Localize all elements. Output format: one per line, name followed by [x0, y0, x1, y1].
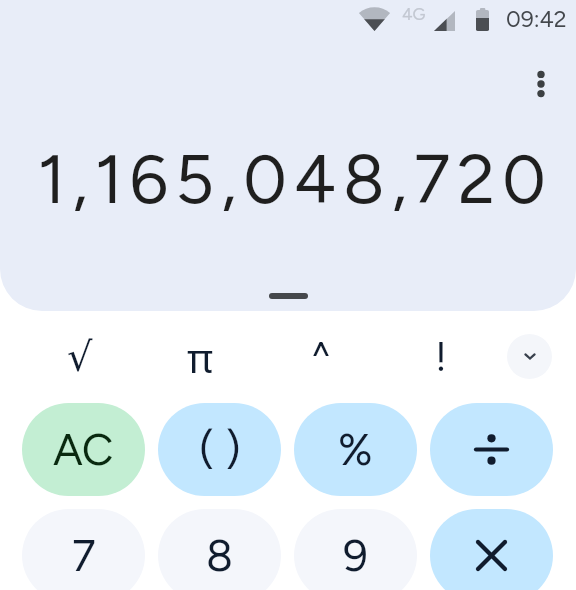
button[interactable]: % [294, 403, 417, 496]
staticText: 8 [206, 529, 234, 582]
button[interactable]: ( ) [158, 403, 281, 496]
button[interactable]: √ [34, 311, 126, 403]
button[interactable]: π [154, 311, 246, 403]
button[interactable]: Divide [430, 403, 553, 496]
staticText: 4G [402, 4, 426, 24]
staticText: 1,165,048,720 [7, 138, 576, 220]
staticText: AC [53, 423, 114, 476]
button[interactable]: ! [395, 311, 487, 403]
button[interactable]: 7 [22, 509, 145, 590]
button[interactable]: Collapse keypad [507, 334, 552, 379]
button[interactable]: Multiply [430, 509, 553, 590]
button[interactable]: More options [517, 60, 565, 108]
button[interactable]: ^ [275, 311, 367, 403]
button[interactable]: 8 [158, 509, 281, 590]
staticText: ! [435, 333, 447, 381]
button[interactable]: AC [22, 403, 145, 496]
staticText: π [187, 330, 214, 384]
staticText: % [338, 423, 373, 476]
staticText: 9 [343, 529, 368, 582]
staticText: ( ) [199, 423, 241, 476]
staticText: ^ [310, 333, 333, 381]
staticText: 7 [72, 529, 96, 582]
staticText: 09:42 [506, 5, 567, 33]
staticText: √ [67, 334, 93, 381]
button[interactable]: 9 [294, 509, 417, 590]
